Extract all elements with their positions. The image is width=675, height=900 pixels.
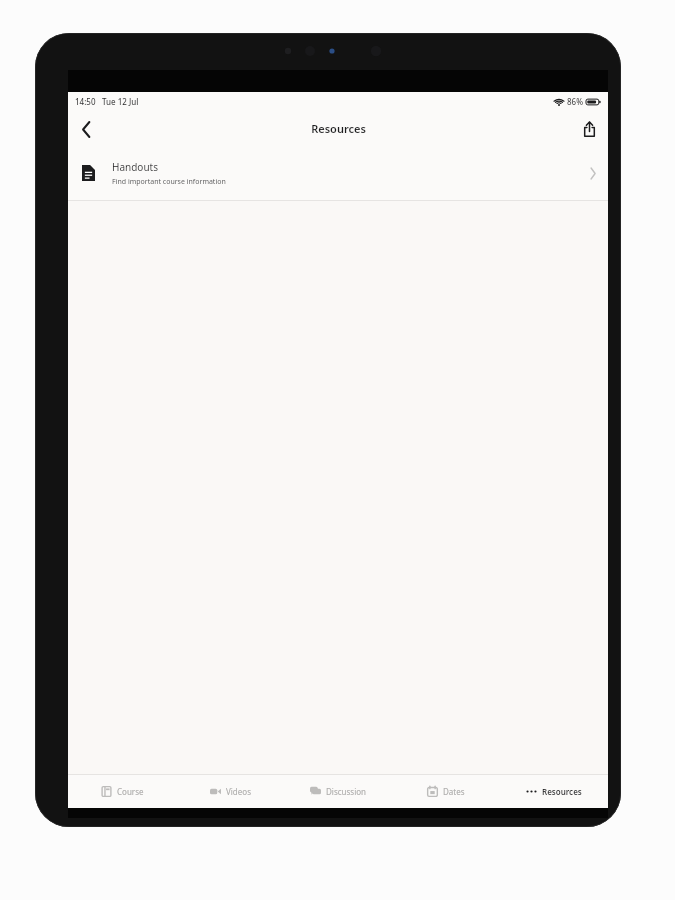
staticText: Handouts: [112, 160, 158, 174]
staticText: Videos: [226, 786, 251, 797]
staticText: Tue 12 Jul: [102, 96, 139, 107]
staticText: Resources: [311, 121, 366, 136]
button[interactable]: Back: [72, 115, 100, 143]
staticText: Find important course information: [112, 177, 226, 187]
button[interactable]: Videos: [176, 775, 284, 808]
button[interactable]: Discussion: [284, 775, 392, 808]
staticText: Course: [117, 786, 144, 797]
button[interactable]: Handouts: [68, 146, 608, 200]
staticText: Resources: [542, 786, 582, 797]
staticText: 86%: [567, 96, 583, 107]
button[interactable]: Dates: [392, 775, 500, 808]
button[interactable]: Resources: [500, 775, 608, 808]
button[interactable]: Share: [575, 115, 603, 143]
staticText: Dates: [443, 786, 465, 797]
staticText: Discussion: [326, 786, 367, 797]
staticText: 14:50: [75, 96, 96, 107]
button[interactable]: Course: [68, 775, 176, 808]
